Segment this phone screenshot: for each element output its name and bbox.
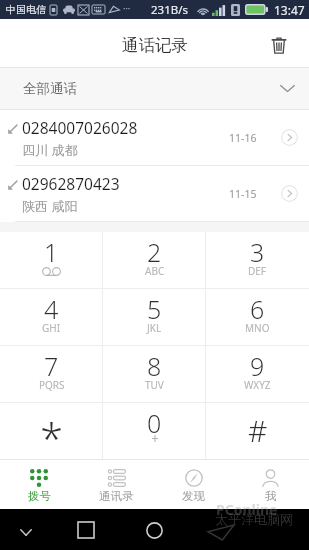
staticText: 11-16: [229, 131, 257, 145]
button[interactable]: 5: [103, 289, 206, 345]
staticText: 通话记录: [122, 35, 188, 56]
staticText: 231B/s: [151, 2, 188, 18]
staticText: 太平洋电脑网: [215, 511, 293, 527]
button[interactable]: Recents: [70, 514, 102, 546]
staticText: 7: [44, 349, 59, 383]
staticText: TUV: [145, 378, 164, 392]
staticText: 中国电信: [6, 3, 46, 16]
staticText: 13:47: [274, 2, 305, 18]
staticText: #: [248, 410, 268, 451]
staticText: GHI: [42, 321, 61, 335]
staticText: *: [40, 409, 64, 465]
staticText: 陕西 咸阳: [22, 197, 78, 215]
button[interactable]: Back: [10, 515, 42, 547]
button[interactable]: #: [206, 403, 309, 459]
staticText: ···: [123, 2, 131, 14]
button[interactable]: 0: [103, 403, 206, 459]
staticText: 1: [44, 235, 59, 269]
button[interactable]: 0284007026028: [0, 110, 309, 166]
button[interactable]: 3: [206, 232, 309, 288]
staticText: 2: [147, 235, 162, 269]
button[interactable]: 2: [103, 232, 206, 288]
staticText: 0: [147, 406, 162, 440]
button[interactable]: 6: [206, 289, 309, 345]
button[interactable]: Delete call log: [263, 28, 293, 58]
button[interactable]: 发现: [155, 460, 232, 509]
button[interactable]: 02962870423: [0, 166, 309, 222]
button[interactable]: 1: [0, 232, 103, 288]
staticText: 9: [250, 349, 265, 383]
staticText: 全部通话: [23, 80, 77, 97]
button[interactable]: Call details: [281, 185, 298, 202]
staticText: JKL: [147, 321, 162, 335]
button[interactable]: *: [0, 403, 103, 459]
button[interactable]: Call details: [281, 129, 298, 146]
staticText: MNO: [245, 321, 270, 335]
staticText: 我: [265, 489, 277, 503]
staticText: WXYZ: [244, 378, 271, 392]
staticText: PConline: [216, 500, 278, 519]
staticText: 4: [44, 292, 59, 326]
staticText: 3: [250, 235, 265, 269]
button[interactable]: 全部通话: [0, 68, 309, 109]
staticText: 02962870423: [22, 173, 120, 194]
staticText: 5: [147, 292, 162, 326]
staticText: DEF: [248, 264, 267, 278]
button[interactable]: 8: [103, 346, 206, 402]
staticText: 通讯录: [99, 489, 134, 503]
staticText: 发现: [182, 489, 205, 503]
button[interactable]: 7: [0, 346, 103, 402]
staticText: 11-15: [229, 187, 257, 201]
staticText: 0284007026028: [22, 117, 138, 138]
staticText: 拨号: [28, 489, 51, 503]
button[interactable]: 拨号: [0, 460, 78, 509]
staticText: PQRS: [39, 378, 65, 392]
button[interactable]: 通讯录: [78, 460, 155, 509]
button[interactable]: 9: [206, 346, 309, 402]
button[interactable]: Home: [138, 514, 170, 546]
staticText: ABC: [145, 264, 165, 278]
button[interactable]: 4: [0, 289, 103, 345]
staticText: 6: [250, 292, 265, 326]
button[interactable]: 我: [232, 460, 309, 509]
staticText: 四川 成都: [22, 141, 78, 159]
staticText: 8: [147, 349, 162, 383]
